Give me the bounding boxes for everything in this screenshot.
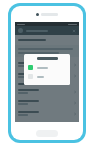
- button[interactable]: [15, 98, 79, 109]
- button[interactable]: [15, 87, 79, 98]
- button[interactable]: [15, 22, 79, 122]
- button[interactable]: [24, 81, 70, 85]
- button[interactable]: [15, 109, 79, 120]
- button[interactable]: [15, 60, 79, 71]
- button[interactable]: Close: [72, 29, 76, 33]
- button[interactable]: [24, 63, 70, 72]
- other: Navigation menu: [18, 28, 23, 33]
- button[interactable]: [15, 71, 79, 82]
- button[interactable]: Navigation menu: [15, 26, 79, 35]
- button[interactable]: [24, 72, 70, 81]
- button[interactable]: Home: [36, 130, 58, 137]
